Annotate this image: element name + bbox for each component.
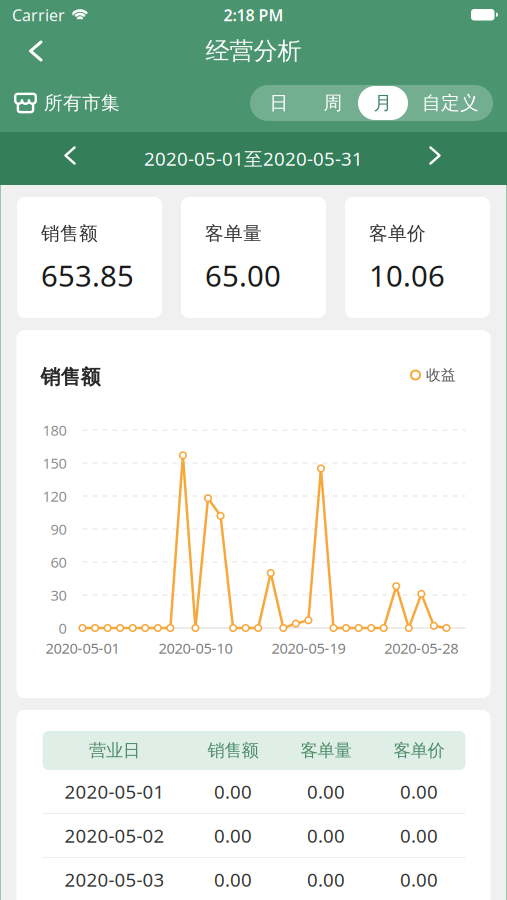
staticText: 销售额 (207, 740, 258, 761)
staticText: 120 (42, 486, 66, 506)
staticText: 所有市集 (44, 91, 120, 114)
staticText: 2:18 PM (223, 4, 283, 26)
staticText: 客单价 (369, 222, 426, 245)
button[interactable]: 所有市集 (0, 91, 120, 114)
staticText: 0.00 (307, 779, 345, 804)
button[interactable]: Back (0, 28, 43, 74)
staticText: 经营分析 (205, 36, 301, 66)
staticText: 0.00 (400, 867, 438, 892)
staticText: 营业日 (89, 740, 140, 761)
staticText: 10.06 (369, 256, 445, 295)
button[interactable]: 月 (358, 86, 408, 120)
staticText: 客单量 (205, 222, 262, 245)
button[interactable]: 周 (308, 86, 358, 120)
staticText: 653.85 (41, 256, 134, 295)
staticText: 0.00 (214, 867, 252, 892)
staticText: 65.00 (205, 256, 281, 295)
staticText: 0.00 (307, 867, 345, 892)
staticText: 客单价 (393, 740, 444, 761)
button[interactable]: 收益 legend (411, 366, 456, 384)
staticText: 0.00 (214, 823, 252, 848)
staticText: 月 (373, 91, 392, 114)
staticText: 销售额 (40, 365, 100, 389)
staticText: 2020-05-01 (45, 638, 119, 658)
staticText: 150 (42, 453, 66, 473)
button[interactable]: 自定义 (408, 86, 493, 120)
staticText: Carrier (12, 4, 65, 26)
staticText: 60 (50, 552, 66, 572)
staticText: 销售额 (41, 222, 98, 245)
staticText: 周 (323, 91, 342, 114)
staticText: 客单量 (300, 740, 351, 761)
button[interactable]: Previous period (0, 133, 76, 184)
button[interactable]: Next period (429, 133, 507, 184)
staticText: 0.00 (400, 823, 438, 848)
staticText: 2020-05-19 (271, 638, 345, 658)
staticText: 180 (42, 420, 66, 440)
staticText: 0.00 (400, 779, 438, 804)
staticText: 自定义 (422, 91, 479, 114)
staticText: 2020-05-02 (64, 823, 164, 848)
button[interactable]: 日 (250, 86, 308, 120)
staticText: 90 (50, 519, 66, 539)
staticText: 2020-05-28 (384, 638, 458, 658)
staticText: 2020-05-01至2020-05-31 (144, 146, 363, 171)
staticText: 收益 (426, 366, 456, 384)
staticText: 日 (269, 91, 288, 114)
staticText: 0.00 (214, 779, 252, 804)
staticText: 2020-05-03 (64, 867, 164, 892)
staticText: 0 (58, 618, 66, 638)
staticText: 0.00 (307, 823, 345, 848)
staticText: 2020-05-10 (158, 638, 232, 658)
staticText: 2020-05-01 (64, 779, 164, 804)
staticText: 30 (50, 585, 66, 605)
